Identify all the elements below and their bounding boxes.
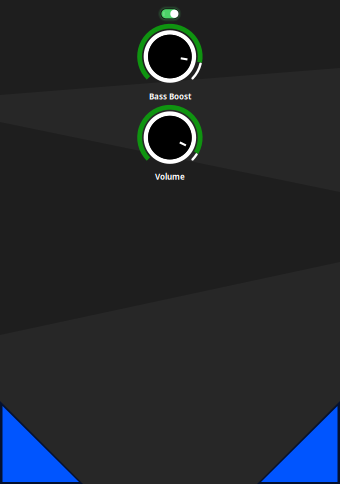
staticText: Volume [155,171,185,182]
staticText: Bass Boost [149,91,191,102]
button[interactable]: Power [158,6,182,22]
